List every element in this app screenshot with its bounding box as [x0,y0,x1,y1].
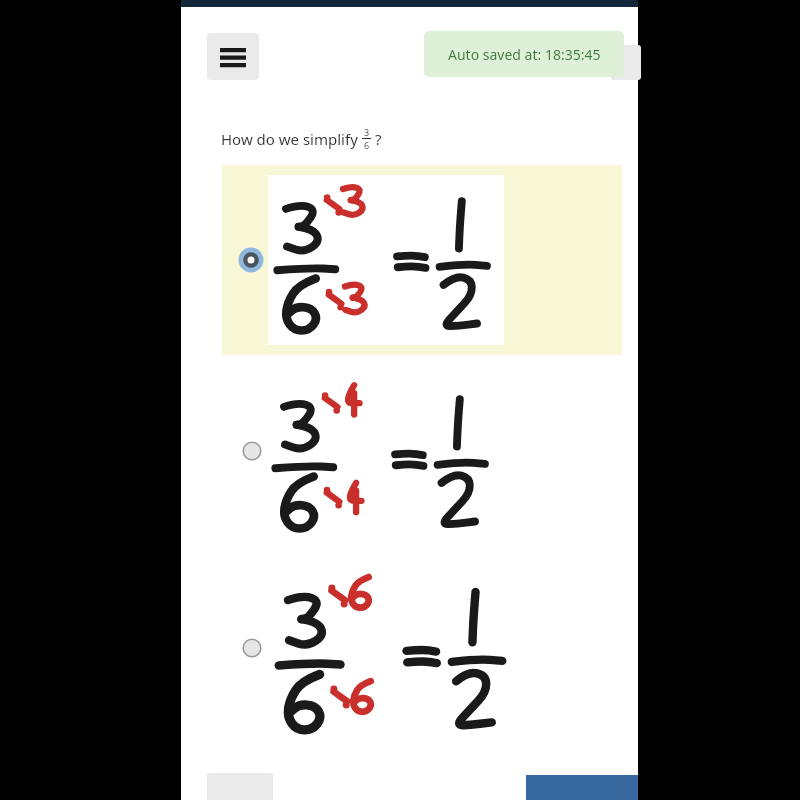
staticText: How do we simplify [221,129,362,149]
staticText: 6 [364,139,370,151]
button[interactable]: Auto saved at: 18:35:45 [424,31,624,77]
staticText: 3 [364,126,370,138]
button[interactable]: Menu [207,33,259,80]
staticText: Auto saved at: 18:35:45 [448,45,601,64]
button[interactable] [222,375,622,530]
staticText: ? [371,129,382,149]
button[interactable] [222,570,622,730]
button[interactable] [222,165,622,355]
